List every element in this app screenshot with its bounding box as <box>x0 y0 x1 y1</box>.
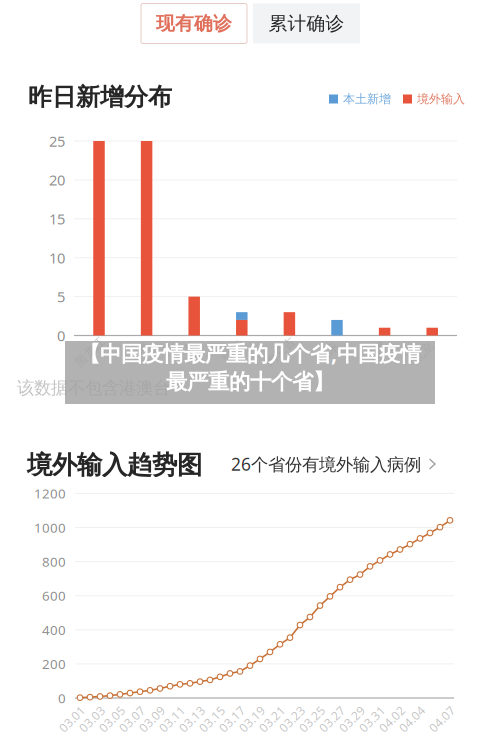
button[interactable]: 累计确诊 <box>253 3 360 43</box>
staticText: 陕西 <box>221 345 245 359</box>
staticText: 境外输入趋势图 <box>27 449 202 480</box>
button[interactable]: 26个省份有境外输入病例 <box>231 452 437 475</box>
staticText: 内蒙古 <box>262 345 298 359</box>
staticText: 03.15 <box>196 711 227 727</box>
staticText: 03.31 <box>356 711 387 727</box>
staticText: 累计确诊 <box>268 12 344 35</box>
staticText: 昨日新增分布 <box>28 82 172 112</box>
staticText: 该数据不包含港澳台 <box>17 377 170 399</box>
staticText: 03.05 <box>96 711 127 727</box>
staticText: 04.02 <box>376 711 407 727</box>
staticText: 现有确诊 <box>156 12 232 35</box>
staticText: 山东 <box>316 345 340 359</box>
staticText: 400 <box>42 621 66 639</box>
staticText: 本土新增 <box>343 92 391 106</box>
staticText: 1200 <box>34 484 66 502</box>
staticText: 25 <box>49 131 65 151</box>
staticText: 800 <box>42 553 66 570</box>
staticText: 03.19 <box>236 711 267 727</box>
staticText: 03.03 <box>76 711 107 727</box>
staticText: 03.09 <box>136 711 167 727</box>
staticText: 20 <box>49 170 65 190</box>
staticText: 0 <box>58 689 66 707</box>
staticText: 26个省份有境外输入病例 <box>231 452 421 475</box>
staticText: 04.07 <box>426 711 457 727</box>
staticText: 03.17 <box>216 711 247 727</box>
button[interactable]: 现有确诊 <box>141 3 247 43</box>
staticText: 03.23 <box>276 711 307 727</box>
staticText: 10 <box>49 248 65 267</box>
staticText: 03.21 <box>256 711 287 727</box>
staticText: 5 <box>57 287 65 306</box>
staticText: 15 <box>49 209 65 229</box>
staticText: 上海 <box>126 345 150 359</box>
staticText: 境外输入 <box>417 92 465 106</box>
staticText: 广东 <box>173 345 197 359</box>
staticText: 03.27 <box>316 711 347 727</box>
staticText: 03.29 <box>336 711 367 727</box>
staticText: 03.25 <box>296 711 327 727</box>
staticText: 黑龙江 <box>72 345 108 359</box>
staticText: 04.04 <box>396 711 427 727</box>
staticText: 天津 <box>364 345 388 359</box>
staticText: 03.13 <box>176 711 207 727</box>
staticText: 北京 <box>411 345 435 359</box>
staticText: 600 <box>42 587 66 604</box>
staticText: 200 <box>42 655 66 673</box>
staticText: 03.07 <box>116 711 147 727</box>
staticText: 最严重的十个省】 <box>166 369 334 395</box>
staticText: 03.01 <box>56 711 87 727</box>
staticText: 1000 <box>34 519 66 536</box>
staticText: 【中国疫情最严重的几个省,中国疫情 <box>79 339 421 367</box>
staticText: 0 <box>57 326 65 345</box>
staticText: 03.11 <box>156 711 187 727</box>
